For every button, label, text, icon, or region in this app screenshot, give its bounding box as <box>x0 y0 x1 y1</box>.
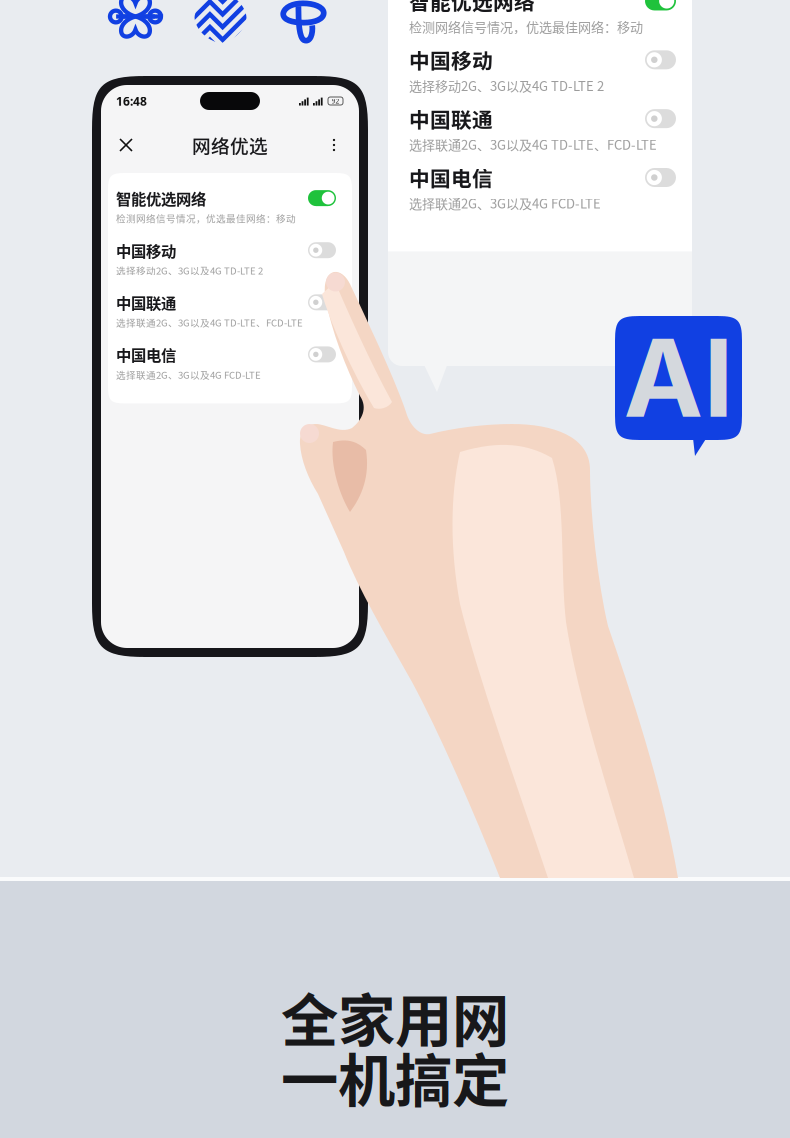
staticText: AI <box>623 313 733 443</box>
staticText: 中国联通 <box>409 104 493 134</box>
button[interactable]: 中国联通 <box>409 104 676 153</box>
staticText: 一机搞定 <box>281 1035 509 1118</box>
staticText: 中国移动 <box>409 45 493 75</box>
staticText: 中国移动 <box>116 239 176 261</box>
staticText: 选择联通2G、3G以及4G TD-LTE、FCD-LTE <box>116 315 303 329</box>
staticText: 选择移动2G、3G以及4G TD-LTE 2 <box>409 76 604 95</box>
button[interactable]: More options <box>321 132 347 158</box>
button[interactable]: 中国电信 <box>116 343 336 381</box>
staticText: 检测网络信号情况，优选最佳网络：移动 <box>409 17 643 36</box>
staticText: 中国联通 <box>116 291 176 313</box>
staticText: 选择联通2G、3G以及4G FCD-LTE <box>409 193 601 212</box>
button[interactable]: Close <box>113 132 139 158</box>
staticText: 智能优选网络 <box>116 187 206 209</box>
staticText: 中国电信 <box>116 343 176 365</box>
staticText: 92 <box>331 97 339 105</box>
button[interactable]: 智能优选网络 <box>409 0 676 36</box>
staticText: 16:48 <box>116 93 147 109</box>
button[interactable]: 中国移动 <box>116 239 336 277</box>
staticText: 网络优选 <box>192 131 268 158</box>
staticText: 检测网络信号情况，优选最佳网络：移动 <box>116 211 296 225</box>
button[interactable]: 中国移动 <box>409 45 676 95</box>
button[interactable]: 智能优选网络 <box>116 187 336 225</box>
staticText: 选择联通2G、3G以及4G TD-LTE、FCD-LTE <box>409 135 657 153</box>
button[interactable]: 中国联通 <box>116 291 336 329</box>
staticText: 选择移动2G、3G以及4G TD-LTE 2 <box>116 263 263 277</box>
staticText: 智能优选网络 <box>409 0 535 16</box>
staticText: 中国电信 <box>409 162 493 192</box>
staticText: 全家用网 <box>281 975 509 1058</box>
staticText: 选择联通2G、3G以及4G FCD-LTE <box>116 367 261 381</box>
button[interactable]: 中国电信 <box>409 162 676 212</box>
